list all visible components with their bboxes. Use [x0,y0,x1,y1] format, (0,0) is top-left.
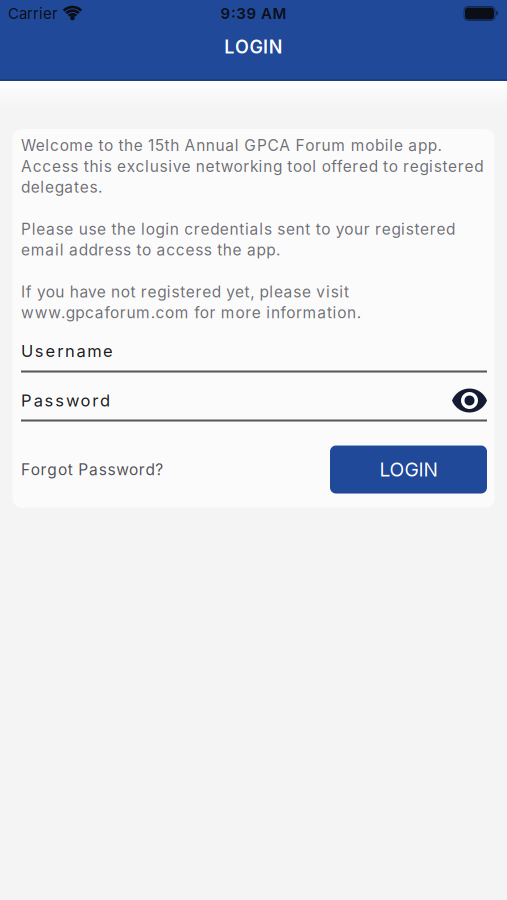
staticText: Carrier [8,4,58,22]
button[interactable]: Password [21,390,110,410]
staticText: Password [21,390,110,410]
staticText: LOGIN [224,36,283,58]
staticText: Welcome to the 15th Annual GPCA Forum mo… [21,136,483,322]
staticText: Forgot Password? [21,460,163,479]
button[interactable]: Show password [452,388,487,412]
button[interactable]: LOGIN [330,445,487,493]
button[interactable]: Forgot Password? [21,460,163,479]
staticText: 9:39 AM [221,4,286,22]
staticText: LOGIN [379,458,437,481]
button[interactable]: Username [21,341,487,373]
staticText: Username [21,341,113,361]
